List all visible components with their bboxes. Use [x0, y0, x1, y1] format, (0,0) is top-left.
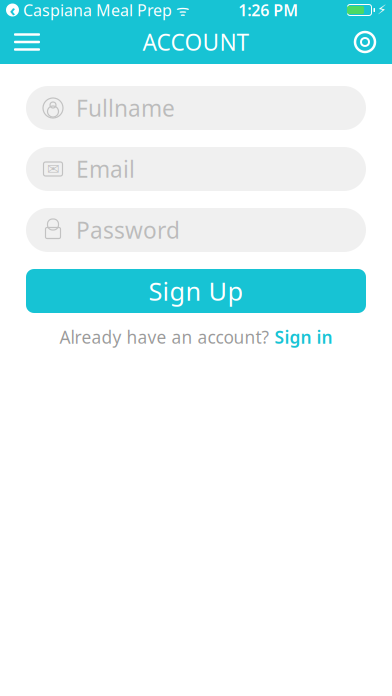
button[interactable]: Menu — [0, 20, 54, 64]
staticText: 1:26 PM — [238, 0, 298, 21]
staticText: ACCOUNT — [142, 27, 249, 57]
button[interactable]: Settings — [338, 20, 392, 64]
staticText: ✉ — [47, 161, 59, 177]
staticText: ᯤ — [172, 0, 189, 20]
staticText: Email — [76, 154, 135, 184]
staticText: ‹ — [9, 0, 15, 21]
button[interactable]: Already have an account? — [26, 325, 366, 349]
staticText: ⚡︎ — [377, 2, 386, 17]
staticText: Fullname — [76, 93, 175, 123]
staticText: Already have an account? — [59, 325, 274, 348]
staticText: Password — [76, 215, 180, 245]
staticText: Caspiana Meal Prep — [19, 0, 172, 21]
button[interactable]: Sign Up — [26, 269, 366, 313]
staticText: Sign in — [274, 325, 332, 348]
staticText: Sign Up — [148, 274, 243, 308]
